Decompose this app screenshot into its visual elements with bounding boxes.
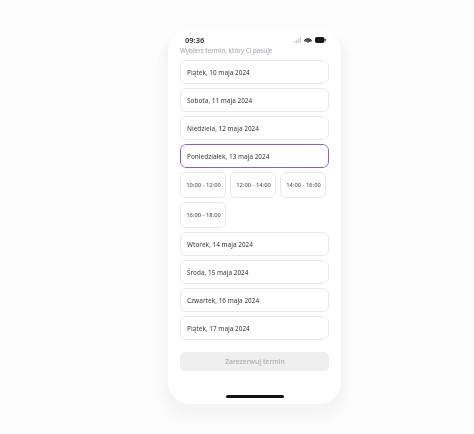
staticText: Poniedziałek, 13 maja 2024 (187, 152, 270, 161)
button[interactable]: Środa, 15 maja 2024 (180, 260, 329, 284)
button[interactable]: 14:00 - 16:00 (280, 172, 326, 198)
button[interactable]: 16:00 - 18:00 (180, 202, 226, 228)
staticText: Czwartek, 16 maja 2024 (187, 296, 260, 305)
staticText: Piątek, 17 maja 2024 (187, 324, 250, 333)
staticText: 16:00 - 18:00 (186, 211, 221, 219)
button[interactable]: 12:00 - 14:00 (230, 172, 276, 198)
button[interactable]: Zarezerwuj termin (180, 352, 329, 371)
staticText: Środa, 15 maja 2024 (187, 268, 249, 277)
staticText: 10:00 - 12:00 (186, 181, 221, 189)
staticText: Niedziela, 12 maja 2024 (187, 124, 259, 133)
staticText: Piątek, 10 maja 2024 (187, 68, 250, 77)
button[interactable]: Czwartek, 16 maja 2024 (180, 288, 329, 312)
staticText: Zarezerwuj termin (225, 357, 285, 366)
button[interactable]: Sobota, 11 maja 2024 (180, 88, 329, 112)
button[interactable]: Poniedziałek, 13 maja 2024 (180, 144, 329, 168)
button[interactable]: Piątek, 10 maja 2024 (180, 60, 329, 84)
staticText: 14:00 - 16:00 (286, 181, 321, 189)
staticText: 12:00 - 14:00 (236, 181, 271, 189)
staticText: Wybierz termin, który Ci pasuje (180, 46, 273, 54)
staticText: 09:36 (185, 35, 205, 45)
staticText: Wtorek, 14 maja 2024 (187, 240, 253, 249)
button[interactable]: Niedziela, 12 maja 2024 (180, 116, 329, 140)
button[interactable]: 10:00 - 12:00 (180, 172, 226, 198)
button[interactable]: Piątek, 17 maja 2024 (180, 316, 329, 340)
staticText: Sobota, 11 maja 2024 (187, 96, 253, 105)
button[interactable]: Wtorek, 14 maja 2024 (180, 232, 329, 256)
